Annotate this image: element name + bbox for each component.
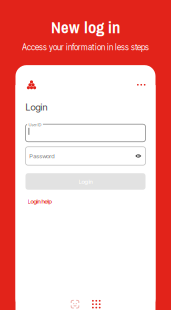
button[interactable]: Face ID login <box>71 300 79 308</box>
button[interactable]: Login help <box>25 196 53 207</box>
staticText: Access your information in less steps <box>22 42 149 52</box>
staticText: User ID <box>28 122 41 127</box>
button[interactable]: Passcode keypad <box>93 301 100 308</box>
button[interactable]: More options <box>137 81 145 89</box>
staticText: Login help <box>27 198 51 205</box>
staticText: Password <box>29 152 54 160</box>
staticText: Log in <box>78 178 92 185</box>
staticText: Login <box>25 101 47 113</box>
button[interactable]: Log in <box>25 173 145 190</box>
staticText: New log in <box>51 16 120 38</box>
